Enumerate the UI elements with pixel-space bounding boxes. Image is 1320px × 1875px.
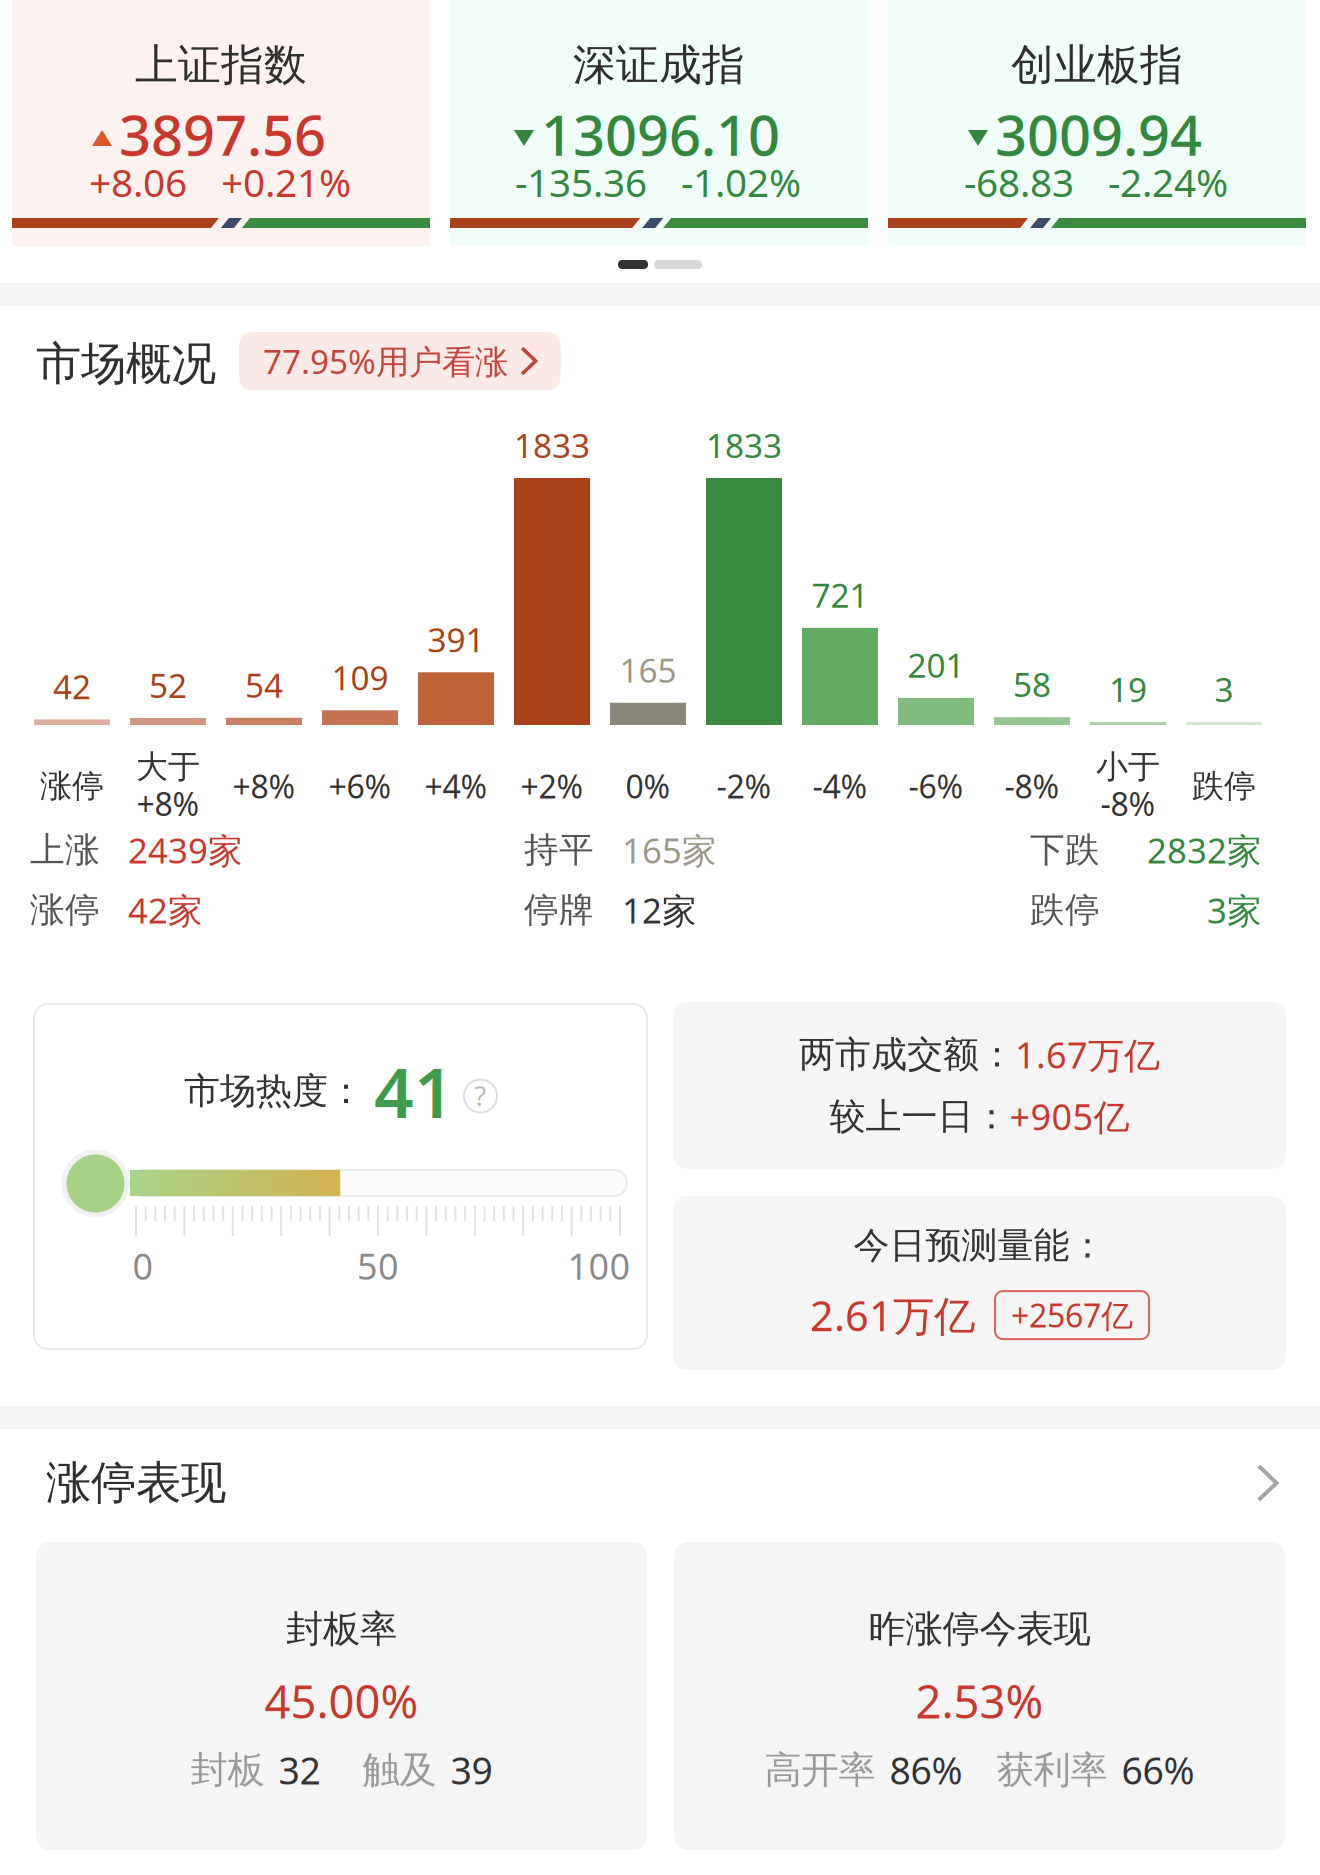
staticText: 0% [625, 765, 670, 807]
staticText: 市场概况 [36, 336, 216, 392]
staticText: -1.02% [681, 156, 801, 208]
staticText: 3009.94 [995, 97, 1202, 171]
staticText: +0.21% [221, 156, 351, 208]
staticText: 86% [889, 1745, 962, 1795]
staticText: -6% [908, 765, 963, 807]
staticText: 0 [132, 1242, 153, 1290]
staticText: 721 [811, 573, 868, 617]
staticText: 市场热度： [184, 1069, 364, 1113]
staticText: 涨停表现 [46, 1455, 226, 1511]
staticText: 41 [374, 1045, 454, 1137]
staticText: 54 [245, 663, 283, 707]
staticText: -2% [716, 765, 771, 807]
staticText: 19 [1109, 667, 1147, 711]
staticText: 持平 [524, 829, 594, 871]
staticText: 45.00% [264, 1671, 418, 1731]
staticText: 42家 [128, 887, 203, 933]
button[interactable]: 封板率 [36, 1542, 647, 1850]
staticText: 触及 [362, 1747, 436, 1793]
staticText: -8% [1100, 782, 1155, 825]
staticText: 2439家 [128, 827, 243, 873]
staticText: 52 [149, 663, 187, 707]
staticText: +2% [520, 765, 583, 807]
staticText: 165 [619, 648, 676, 692]
staticText: 封板 [190, 1747, 264, 1793]
staticText: 跌停 [1192, 766, 1256, 806]
staticText: 1833 [514, 423, 590, 467]
button[interactable]: 昨涨停今表现 [674, 1542, 1285, 1850]
staticText: 201 [907, 643, 964, 687]
staticText: 跌停 [1030, 889, 1100, 931]
staticText: 391 [427, 617, 484, 661]
staticText: 2.53% [915, 1671, 1043, 1731]
staticText: 39 [450, 1745, 492, 1795]
staticText: ? [474, 1078, 486, 1114]
staticText: 深证成指 [573, 39, 745, 91]
staticText: 较上一日： [829, 1094, 1009, 1138]
staticText: +6% [328, 765, 391, 807]
staticText: 昨涨停今表现 [868, 1606, 1090, 1652]
staticText: +4% [424, 765, 487, 807]
staticText: 获利率 [996, 1747, 1107, 1793]
staticText: -8% [1004, 765, 1059, 807]
staticText: 今日预测量能： [853, 1223, 1105, 1268]
staticText: 165家 [622, 827, 717, 873]
staticText: 100 [567, 1242, 630, 1290]
staticText: 封板率 [286, 1606, 397, 1652]
staticText: 32 [278, 1745, 320, 1795]
button[interactable]: 77.95%用户看涨 [239, 332, 561, 390]
button[interactable]: 创业板指 [888, 0, 1306, 246]
staticText: 下跌 [1030, 829, 1100, 871]
staticText: +8% [232, 765, 295, 807]
staticText: 创业板指 [1011, 39, 1183, 91]
staticText: 大于 [136, 747, 200, 786]
staticText: 3 [1214, 667, 1233, 711]
button[interactable]: 上证指数 [12, 0, 430, 246]
staticText: 3家 [1207, 887, 1262, 933]
staticText: 1833 [706, 423, 782, 467]
staticText: 1.67万亿 [1015, 1031, 1160, 1078]
staticText: -68.83 [964, 156, 1074, 208]
staticText: 2832家 [1147, 827, 1262, 873]
staticText: -135.36 [515, 156, 647, 208]
staticText: +2567亿 [1011, 1294, 1133, 1336]
staticText: +8% [136, 782, 199, 825]
staticText: 50 [357, 1242, 399, 1290]
staticText: 42 [53, 664, 91, 708]
staticText: 12家 [622, 887, 697, 933]
staticText: 109 [331, 655, 388, 699]
staticText: 停牌 [524, 889, 594, 931]
staticText: 66% [1121, 1745, 1194, 1795]
staticText: 上证指数 [135, 39, 307, 91]
staticText: 上涨 [30, 829, 100, 871]
staticText: +8.06 [89, 156, 187, 208]
staticText: 涨停 [40, 766, 104, 806]
staticText: +905亿 [1009, 1092, 1129, 1140]
staticText: 13096.10 [541, 97, 780, 171]
button[interactable]: 涨停表现 [0, 1434, 1320, 1532]
staticText: 77.95%用户看涨 [263, 339, 508, 383]
staticText: 2.61万亿 [810, 1288, 975, 1343]
staticText: 58 [1013, 662, 1051, 706]
button[interactable]: 深证成指 [450, 0, 868, 246]
staticText: 两市成交额： [799, 1032, 1015, 1077]
staticText: 高开率 [764, 1747, 875, 1793]
staticText: -4% [812, 765, 867, 807]
staticText: 涨停 [30, 889, 100, 931]
staticText: 小于 [1096, 747, 1160, 786]
staticText: -2.24% [1108, 156, 1228, 208]
staticText: 3897.56 [119, 97, 326, 171]
